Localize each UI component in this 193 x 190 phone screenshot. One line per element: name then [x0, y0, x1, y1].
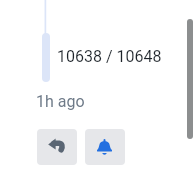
staticText: 10638 / 10648 [57, 47, 162, 66]
button[interactable]: Reply [37, 129, 77, 165]
staticText: 1h ago [36, 92, 85, 111]
button[interactable]: Notifications [85, 129, 125, 165]
